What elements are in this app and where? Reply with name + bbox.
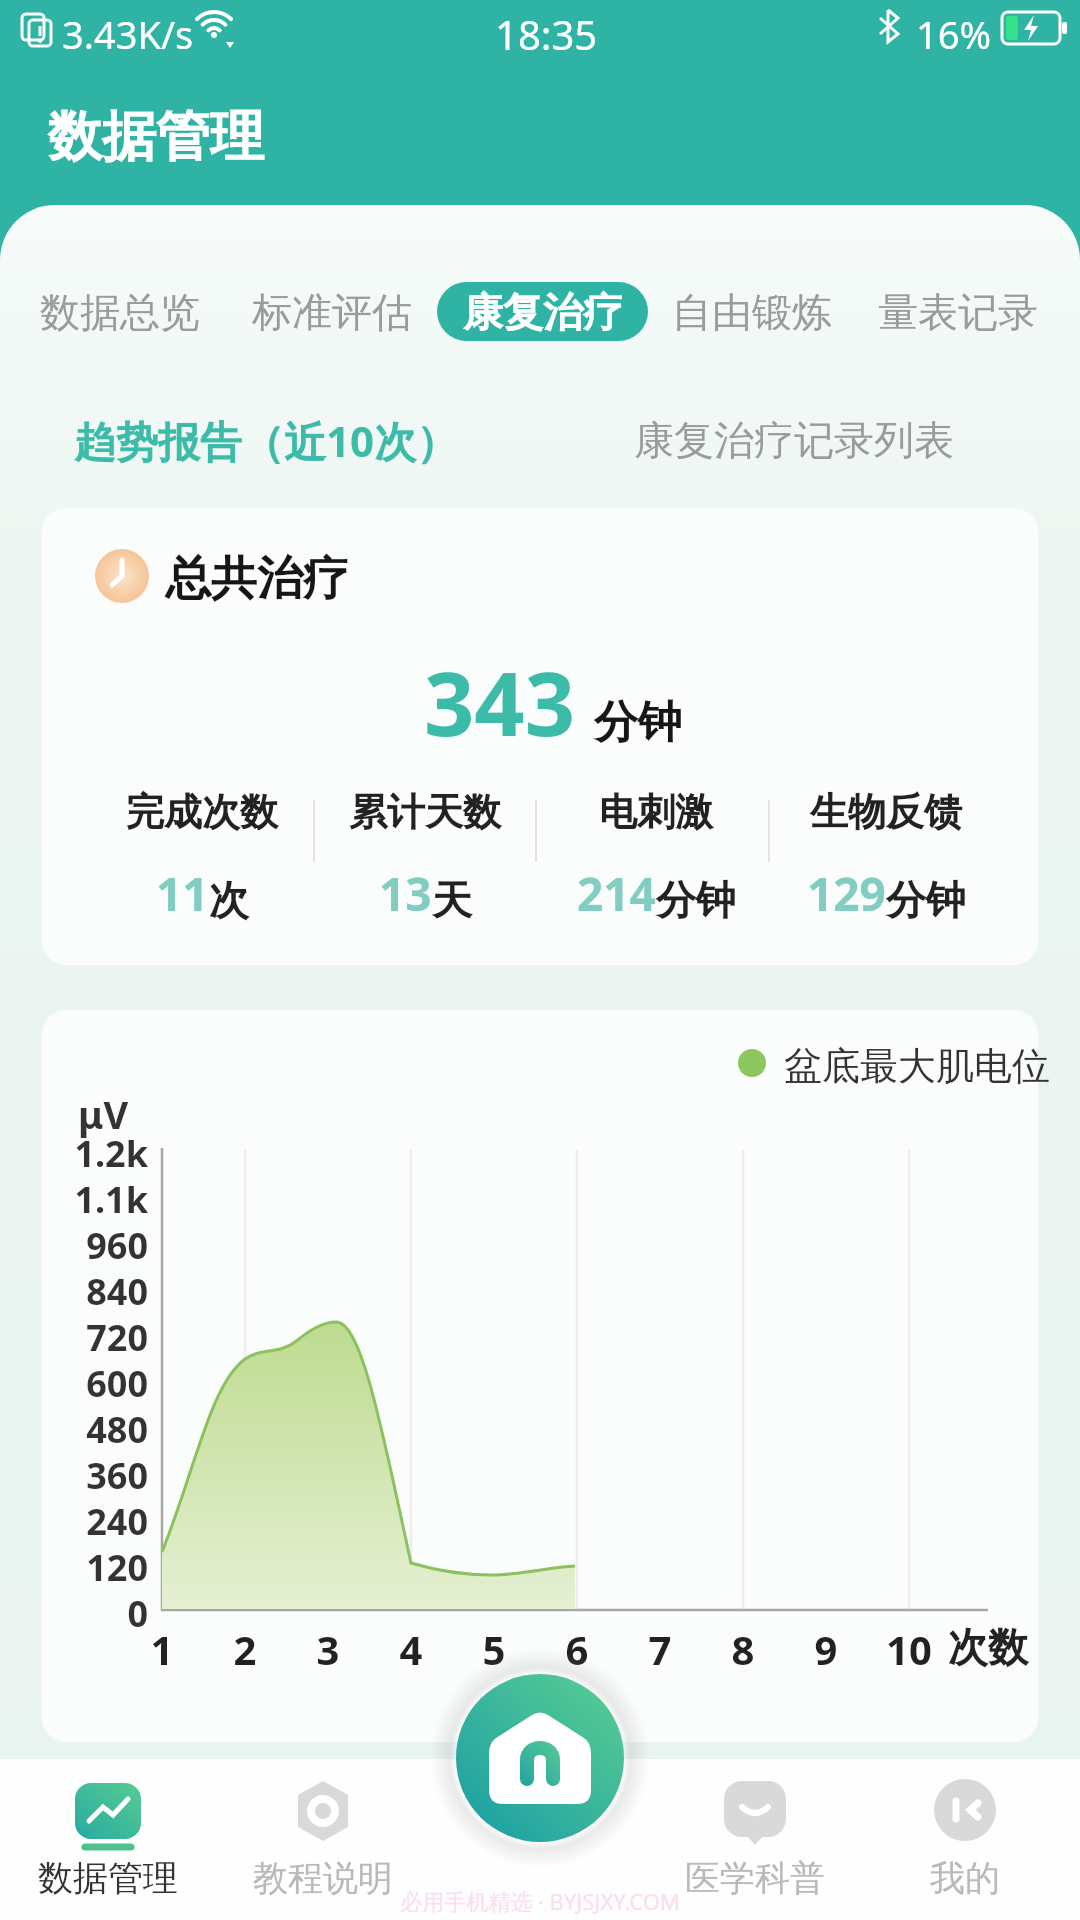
button[interactable]: 数据总览	[40, 287, 200, 337]
staticText: 360	[40, 1451, 148, 1500]
staticText: 11	[156, 862, 209, 925]
staticText: 1.1k	[40, 1175, 148, 1224]
staticText: 3	[288, 1622, 368, 1676]
staticText: 完成次数	[126, 788, 278, 836]
button[interactable]: 我的	[895, 1779, 1035, 1900]
staticText: 600	[40, 1359, 148, 1408]
button[interactable]: 生物反馈	[776, 788, 996, 925]
staticText: 0	[40, 1589, 148, 1638]
staticText: 康复治疗	[463, 287, 623, 337]
button[interactable]	[42, 508, 1038, 965]
staticText: 240	[40, 1497, 148, 1546]
button[interactable]: 累计天数	[315, 788, 535, 925]
staticText: 分钟	[594, 695, 682, 750]
button[interactable]: 康复治疗记录列表	[634, 415, 954, 465]
button[interactable]: 量表记录	[878, 287, 1038, 337]
button[interactable]: 标准评估	[252, 287, 412, 337]
button[interactable]: 自由锻炼	[672, 287, 832, 337]
staticText: 720	[40, 1313, 148, 1362]
button[interactable]: 医学科普	[675, 1779, 835, 1900]
staticText: 天	[432, 875, 472, 925]
staticText: 数据管理	[48, 103, 264, 171]
staticText: 214	[577, 862, 656, 925]
staticText: μV	[78, 1088, 129, 1140]
staticText: 1.2k	[40, 1129, 148, 1178]
staticText: 我的	[930, 1856, 1000, 1900]
staticText: 累计天数	[349, 788, 501, 836]
button[interactable]: 电刺激	[546, 788, 766, 925]
staticText: 电刺激	[599, 788, 713, 836]
staticText: 343	[424, 642, 576, 762]
button[interactable]: 康复治疗	[437, 282, 648, 341]
staticText: 16%	[916, 8, 992, 60]
staticText: 盆底最大肌电位	[784, 1042, 1050, 1090]
staticText: 13	[379, 862, 432, 925]
button[interactable]: 趋势报告（近10次）	[74, 412, 459, 469]
button[interactable]: 完成次数	[92, 788, 312, 925]
staticText: 480	[40, 1405, 148, 1454]
staticText: 分钟	[656, 875, 736, 925]
staticText: 教程说明	[253, 1856, 393, 1900]
staticText: 3.43K/s	[62, 8, 194, 60]
staticText: 次	[209, 875, 249, 925]
staticText: 次数	[948, 1622, 1028, 1672]
staticText: 9	[786, 1622, 866, 1676]
button[interactable]: 教程说明	[243, 1779, 403, 1900]
staticText: 生物反馈	[810, 788, 962, 836]
staticText: 分钟	[886, 875, 966, 925]
button[interactable]: 数据管理	[28, 1779, 188, 1900]
staticText: 数据管理	[38, 1856, 178, 1900]
staticText: 960	[40, 1221, 148, 1270]
staticText: 8	[703, 1622, 783, 1676]
staticText: 2	[205, 1622, 285, 1676]
button[interactable]	[456, 1674, 624, 1842]
staticText: 18:35	[495, 7, 598, 61]
staticText: 120	[40, 1543, 148, 1592]
staticText: 6	[537, 1622, 617, 1676]
staticText: 5	[454, 1622, 534, 1676]
staticText: 医学科普	[685, 1856, 825, 1900]
staticText: 10	[869, 1622, 949, 1676]
staticText: 总共治疗	[165, 550, 349, 608]
button[interactable]	[42, 1010, 1038, 1742]
staticText: 7	[620, 1622, 700, 1676]
staticText: 必用手机精选 · BYJSJXY.COM	[0, 1886, 1080, 1916]
staticText: 4	[371, 1622, 451, 1676]
staticText: 1	[122, 1622, 202, 1676]
staticText: 129	[807, 862, 886, 925]
staticText: 840	[40, 1267, 148, 1316]
